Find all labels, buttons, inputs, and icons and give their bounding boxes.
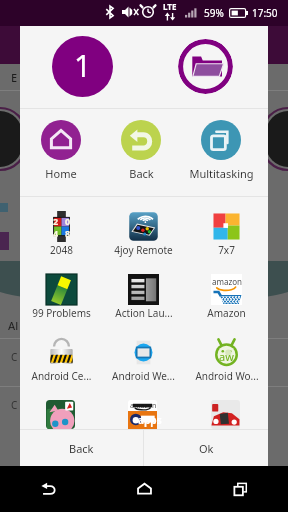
staticText: Multitasking [189, 166, 254, 181]
button[interactable]: 1 [52, 36, 113, 97]
staticText: Android Wo... [195, 369, 259, 383]
staticText: 4joy Remote [114, 243, 173, 257]
button[interactable]: Ok [144, 430, 268, 466]
button[interactable]: Back [26, 467, 70, 511]
staticText: C [11, 350, 18, 364]
staticText: 8 [65, 227, 71, 239]
staticText: Amazon [207, 306, 246, 320]
button[interactable]: Action Lau... [102, 260, 185, 323]
button[interactable]: Android We... [102, 323, 185, 386]
button[interactable]: aw [185, 323, 268, 386]
staticText: 4 [53, 227, 59, 239]
button[interactable]: 7x7 [185, 197, 268, 260]
button[interactable]: Multitasking [181, 109, 261, 196]
staticText: Action Lau... [115, 306, 173, 320]
staticText: aw [219, 349, 234, 364]
staticText: amazon [212, 276, 242, 287]
staticText: 2048 [50, 243, 73, 257]
button[interactable] [20, 386, 102, 429]
button[interactable] [185, 386, 268, 429]
staticText: apps [138, 413, 162, 427]
staticText: 7x7 [218, 243, 235, 257]
staticText: Android Ce... [31, 369, 92, 383]
staticText: 59% [204, 6, 224, 20]
button[interactable]: Back [101, 109, 181, 196]
staticText: Ok [199, 441, 214, 456]
staticText: Al [8, 318, 19, 333]
button[interactable]: amazon [185, 260, 268, 323]
button[interactable]: Home [20, 109, 101, 196]
staticText: 0 [65, 215, 71, 227]
staticText: amazon [130, 401, 157, 411]
button[interactable]: 99 Problems [20, 260, 102, 323]
button[interactable]: amazon [102, 386, 185, 429]
staticText: LTE [163, 1, 177, 12]
button[interactable]: Back [20, 430, 143, 466]
staticText: 17:50 [252, 6, 278, 20]
staticText: Home [45, 166, 77, 181]
staticText: 99 Problems [32, 306, 91, 320]
button[interactable]: Recent apps [218, 467, 262, 511]
staticText: E [11, 70, 18, 85]
staticText: 1 [74, 45, 92, 86]
button[interactable]: Choose folder [178, 39, 233, 94]
staticText: Back [129, 166, 154, 181]
button[interactable]: 2 [20, 197, 102, 260]
button[interactable]: Home [122, 467, 166, 511]
button[interactable]: Android Ce... [20, 323, 102, 386]
button[interactable]: 4joy Remote [102, 197, 185, 260]
staticText: 2 [53, 215, 59, 227]
staticText: Back [69, 441, 94, 456]
staticText: Android We... [112, 369, 175, 383]
staticText: C [11, 398, 18, 412]
